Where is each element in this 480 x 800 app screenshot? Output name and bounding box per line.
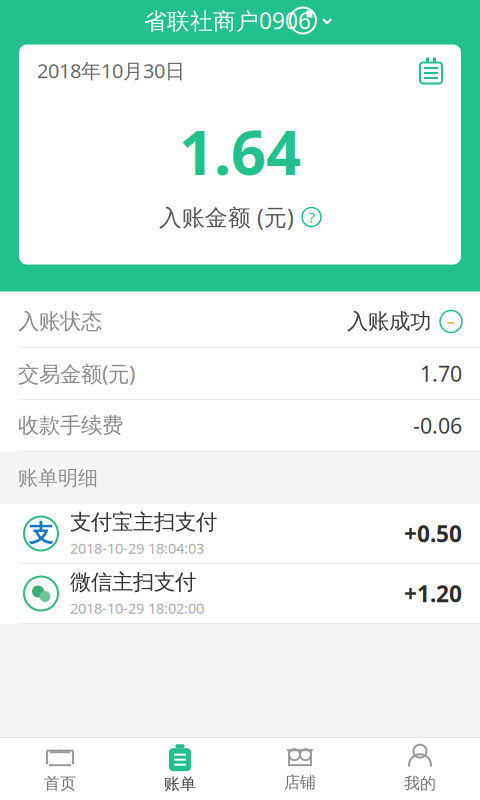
staticText: 支 (29, 519, 53, 548)
staticText: +1.20 (404, 578, 462, 608)
button[interactable]: 首页 (0, 738, 120, 800)
staticText: 省联社商户0906 (144, 5, 311, 35)
staticText: 账单 (164, 774, 196, 794)
staticText: – (446, 310, 455, 333)
staticText: 首页 (44, 774, 76, 793)
staticText: 微信主扫支付 (70, 569, 196, 595)
button[interactable]: 我的 (360, 738, 480, 800)
staticText: +0.50 (404, 518, 462, 548)
button[interactable]: 店铺 (240, 738, 360, 800)
staticText: 入账状态 (18, 308, 102, 335)
staticText: 2018-10-29 18:02:00 (70, 598, 204, 618)
staticText: 2018-10-29 18:04:03 (70, 538, 204, 558)
staticText: 店铺 (284, 773, 316, 792)
staticText: 1.64 (179, 110, 301, 192)
staticText: 2018年10月30日 (37, 57, 185, 84)
staticText: ? (308, 207, 314, 227)
button[interactable]: 省联社商户0906 (144, 0, 336, 44)
button[interactable]: 支 (0, 504, 480, 564)
staticText: 入账成功 (347, 308, 431, 335)
button[interactable]: 账单 (120, 738, 240, 800)
staticText: 收款手续费 (18, 412, 123, 439)
button[interactable]: 选择日期 (419, 57, 443, 84)
staticText: 我的 (404, 774, 436, 793)
staticText: 1.70 (420, 359, 462, 388)
staticText: 账单明细 (18, 466, 98, 490)
staticText: 交易金额(元) (18, 359, 135, 388)
staticText: 支付宝主扫支付 (70, 509, 217, 535)
staticText: ⌄ (318, 4, 336, 29)
staticText: -0.06 (413, 411, 462, 440)
button[interactable]: 说明 (302, 207, 321, 226)
staticText: 入账金额 (元) (159, 202, 294, 232)
button[interactable]: 微信主扫支付 (0, 564, 480, 624)
button[interactable]: 统计 (288, 5, 318, 35)
